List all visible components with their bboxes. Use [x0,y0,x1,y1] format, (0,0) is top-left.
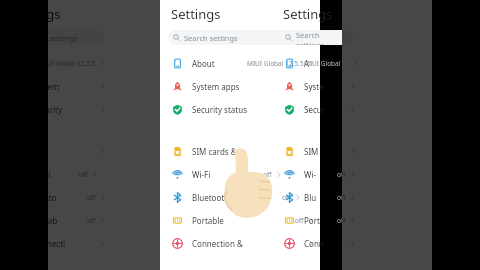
staticText: Bluetooth [48,192,59,203]
button[interactable]: Portable hotspot [272,209,362,232]
staticText: off [87,193,96,202]
staticText: Settings [171,5,221,23]
staticText: Security status [48,104,66,115]
staticText: Wi-Fi [304,169,320,180]
staticText: About phone [192,58,219,69]
staticText: Security status [304,104,327,115]
staticText: System apps updater [304,81,327,92]
staticText: off [79,170,88,179]
button[interactable]: Connection & sharing [160,232,320,255]
staticText: off [337,170,346,179]
button[interactable]: System apps updater [48,75,112,98]
staticText: Search settings [48,33,78,43]
staticText: SIM cards & mobile networks [304,146,327,157]
button[interactable]: Security status [160,98,320,121]
other: Tap indicator [221,148,275,220]
staticText: MIUI Global 12.5.5 [247,59,304,68]
staticText: Settings [283,5,333,23]
staticText: off [337,216,346,225]
staticText: off [337,193,346,202]
staticText: System apps updater [48,81,66,92]
staticText: off [87,216,96,225]
staticText: Connection & sharing [192,238,250,249]
button[interactable]: Bluetooth [48,186,112,209]
staticText: Portable hotspot [48,215,59,226]
button[interactable]: Security status [48,98,112,121]
staticText: Connection & sharing [48,238,66,249]
button[interactable]: Portable hotspot [48,209,112,232]
button[interactable]: Bluetooth [272,186,362,209]
staticText: MIUI Global 12.5.5 [48,59,96,68]
staticText: Wi-Fi [48,169,51,180]
staticText: Search settings [296,30,349,45]
staticText: off [282,193,291,202]
staticText: off [295,216,304,225]
button[interactable]: System apps updater [272,75,362,98]
staticText: MIUI Global 12.5.5 [304,59,352,68]
button[interactable]: About phone [272,52,362,75]
button[interactable]: Connection & sharing [48,232,112,255]
button[interactable]: Wi-Fi [272,163,362,186]
staticText: Bluetooth [192,192,230,203]
staticText: off [263,170,272,179]
staticText: Connection & sharing [304,238,327,249]
button[interactable]: Search settings [280,30,354,45]
button[interactable]: About phone [48,52,112,75]
button[interactable]: Wi-Fi [160,163,320,186]
staticText: System apps updater [192,81,250,92]
button[interactable]: Search settings [48,30,104,45]
button[interactable]: Search settings [168,30,312,45]
staticText: Search settings [184,33,238,43]
staticText: Portable hotspot [304,215,320,226]
staticText: Security status [192,104,247,115]
button[interactable]: About phone [160,52,320,75]
button[interactable]: Connection & sharing [272,232,362,255]
button[interactable]: SIM cards & mobile networks [272,140,362,163]
staticText: Wi-Fi [192,169,211,180]
staticText: SIM cards & mobile networks [192,146,250,157]
button[interactable]: Bluetooth [160,186,320,209]
button[interactable]: SIM cards & mobile networks [160,140,320,163]
staticText: Settings [48,5,61,23]
button[interactable]: Wi-Fi [48,163,112,186]
staticText: Portable hotspot [192,215,243,226]
button[interactable]: Security status [272,98,362,121]
staticText: Bluetooth [304,192,320,203]
button[interactable]: Portable hotspot [160,209,320,232]
button[interactable]: System apps updater [160,75,320,98]
